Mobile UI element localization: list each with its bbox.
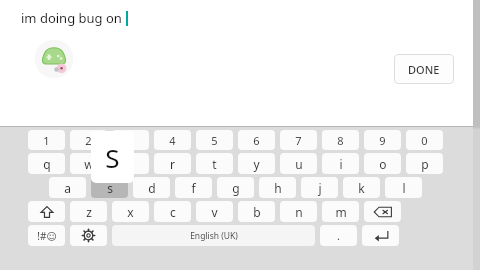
button[interactable]: b <box>238 201 275 222</box>
staticText: o <box>379 156 387 172</box>
button[interactable]: u <box>280 153 317 174</box>
staticText: v <box>211 204 218 220</box>
button[interactable]: y <box>238 153 275 174</box>
button[interactable]: w <box>70 153 107 174</box>
staticText: m <box>335 204 347 220</box>
staticText: j <box>318 180 322 196</box>
staticText: 9 <box>379 133 386 148</box>
staticText: g <box>232 180 240 196</box>
staticText: w <box>84 156 94 172</box>
staticText: c <box>170 204 176 220</box>
staticText: x <box>127 204 134 220</box>
button[interactable]: a <box>49 177 86 198</box>
staticText: t <box>212 156 217 172</box>
button[interactable]: Enter <box>362 225 399 246</box>
staticText: r <box>170 156 175 172</box>
button[interactable]: 3 <box>112 130 149 150</box>
button[interactable]: r <box>154 153 191 174</box>
button[interactable]: DONE <box>394 54 454 84</box>
staticText: y <box>253 156 260 172</box>
button[interactable]: 1 <box>28 130 65 150</box>
staticText: d <box>148 180 156 196</box>
staticText: q <box>43 156 51 172</box>
button[interactable]: x <box>112 201 149 222</box>
button[interactable]: Settings <box>70 225 107 246</box>
staticText: a <box>64 180 71 196</box>
button[interactable]: s <box>91 177 128 198</box>
staticText: im doing bug on <box>21 9 122 27</box>
button[interactable]: d <box>133 177 170 198</box>
staticText: p <box>421 156 429 172</box>
staticText: 6 <box>253 133 260 148</box>
button[interactable]: t <box>196 153 233 174</box>
button[interactable]: Backspace <box>364 201 401 222</box>
button[interactable]: n <box>280 201 317 222</box>
button[interactable]: k <box>343 177 380 198</box>
button[interactable]: 7 <box>280 130 317 150</box>
button[interactable]: 8 <box>322 130 359 150</box>
button[interactable]: 6 <box>238 130 275 150</box>
staticText: English (UK) <box>190 230 238 242</box>
button[interactable]: . <box>320 225 357 246</box>
button[interactable]: 9 <box>364 130 401 150</box>
staticText: !#☺ <box>37 229 57 243</box>
staticText: DONE <box>408 62 440 77</box>
button[interactable]: 4 <box>154 130 191 150</box>
button[interactable]: Shift <box>28 201 65 222</box>
button[interactable]: o <box>364 153 401 174</box>
staticText: s <box>107 180 113 196</box>
button[interactable]: c <box>154 201 191 222</box>
staticText: b <box>253 204 261 220</box>
button[interactable]: 2 <box>70 130 107 150</box>
staticText: z <box>86 204 92 220</box>
staticText: 5 <box>211 133 218 148</box>
staticText: u <box>295 156 303 172</box>
staticText: S <box>105 140 120 175</box>
staticText: f <box>191 180 196 196</box>
staticText: 4 <box>169 133 176 148</box>
button[interactable]: i <box>322 153 359 174</box>
button[interactable]: z <box>70 201 107 222</box>
button[interactable]: 5 <box>196 130 233 150</box>
button[interactable]: v <box>196 201 233 222</box>
staticText: h <box>274 180 282 196</box>
staticText: n <box>295 204 303 220</box>
button[interactable]: l <box>385 177 422 198</box>
button[interactable]: Sticker <box>33 38 75 80</box>
button[interactable]: q <box>28 153 65 174</box>
staticText: k <box>358 180 365 196</box>
staticText: 8 <box>337 133 344 148</box>
button[interactable]: f <box>175 177 212 198</box>
button[interactable]: 0 <box>406 130 443 150</box>
button[interactable]: m <box>322 201 359 222</box>
button[interactable]: j <box>301 177 338 198</box>
button[interactable]: Symbols and emoji <box>28 225 65 246</box>
button[interactable]: e <box>112 153 149 174</box>
staticText: l <box>402 180 406 196</box>
staticText: 1 <box>43 133 50 148</box>
button[interactable]: g <box>217 177 254 198</box>
button[interactable]: Space <box>112 225 315 246</box>
staticText: 0 <box>421 133 428 148</box>
staticText: 7 <box>295 133 302 148</box>
staticText: . <box>337 228 340 243</box>
staticText: 2 <box>85 133 92 148</box>
button[interactable]: h <box>259 177 296 198</box>
button[interactable]: p <box>406 153 443 174</box>
staticText: i <box>339 156 343 172</box>
